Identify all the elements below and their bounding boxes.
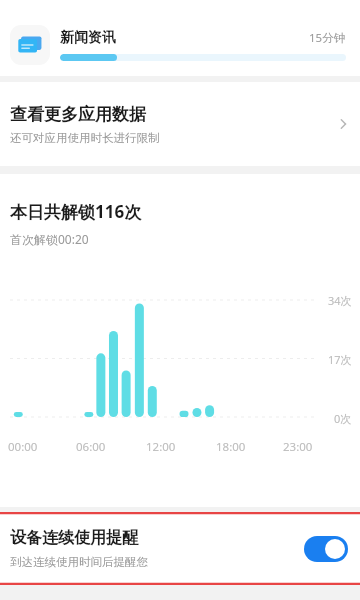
button[interactable]: 新闻资讯 <box>0 14 360 76</box>
button[interactable]: 设备连续使用提醒 <box>0 512 360 585</box>
staticText: 23:00 <box>283 439 313 455</box>
button[interactable]: 查看更多应用数据 <box>0 82 360 166</box>
staticText: 设备连续使用提醒 <box>10 528 138 548</box>
staticText: 15分钟 <box>309 30 346 46</box>
staticText: 06:00 <box>76 439 106 455</box>
staticText: 00:00 <box>8 439 38 455</box>
staticText: 新闻资讯 <box>60 29 116 47</box>
staticText: 首次解锁00:20 <box>10 231 89 247</box>
staticText: 查看更多应用数据 <box>10 104 146 125</box>
staticText: 18:00 <box>216 439 246 455</box>
staticText: 12:00 <box>146 439 176 455</box>
staticText: 到达连续使用时间后提醒您 <box>10 555 148 569</box>
staticText: 17次 <box>328 352 352 367</box>
staticText: 34次 <box>328 293 352 308</box>
staticText: 0次 <box>334 411 352 426</box>
staticText: 还可对应用使用时长进行限制 <box>10 131 160 145</box>
button[interactable]: 设备连续使用提醒开关 <box>304 536 348 562</box>
staticText: 本日共解锁116次 <box>10 200 142 223</box>
